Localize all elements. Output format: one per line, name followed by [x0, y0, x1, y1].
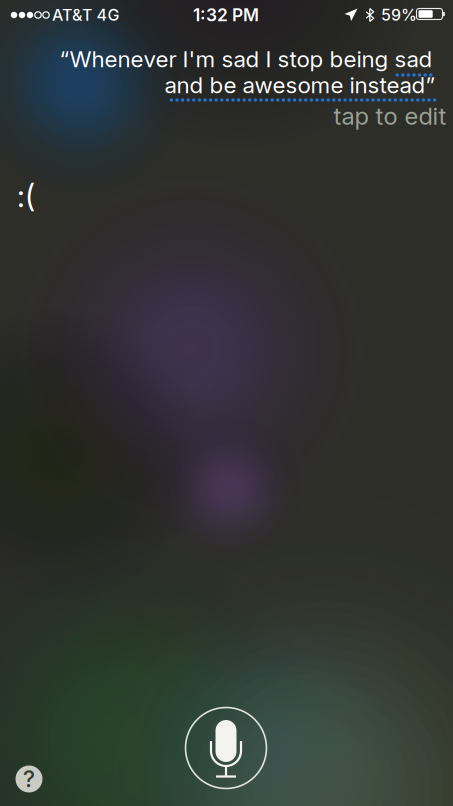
staticText: “Whenever I'm sad I stop being sad — [59, 45, 432, 73]
staticText: AT&T — [52, 5, 92, 25]
button[interactable]: Talk to Siri — [178, 700, 274, 796]
staticText: :( — [17, 177, 35, 214]
staticText: 1:32 PM — [193, 4, 259, 25]
button[interactable]: “Whenever I'm sad I stop being sad — [0, 0, 453, 806]
staticText: 59% — [381, 5, 417, 25]
staticText: and be awesome instead” — [164, 71, 435, 99]
staticText: tap to edit — [333, 101, 446, 130]
staticText: ? — [23, 765, 35, 793]
button[interactable]: Siri Help — [9, 759, 49, 799]
staticText: 4G — [96, 5, 119, 25]
